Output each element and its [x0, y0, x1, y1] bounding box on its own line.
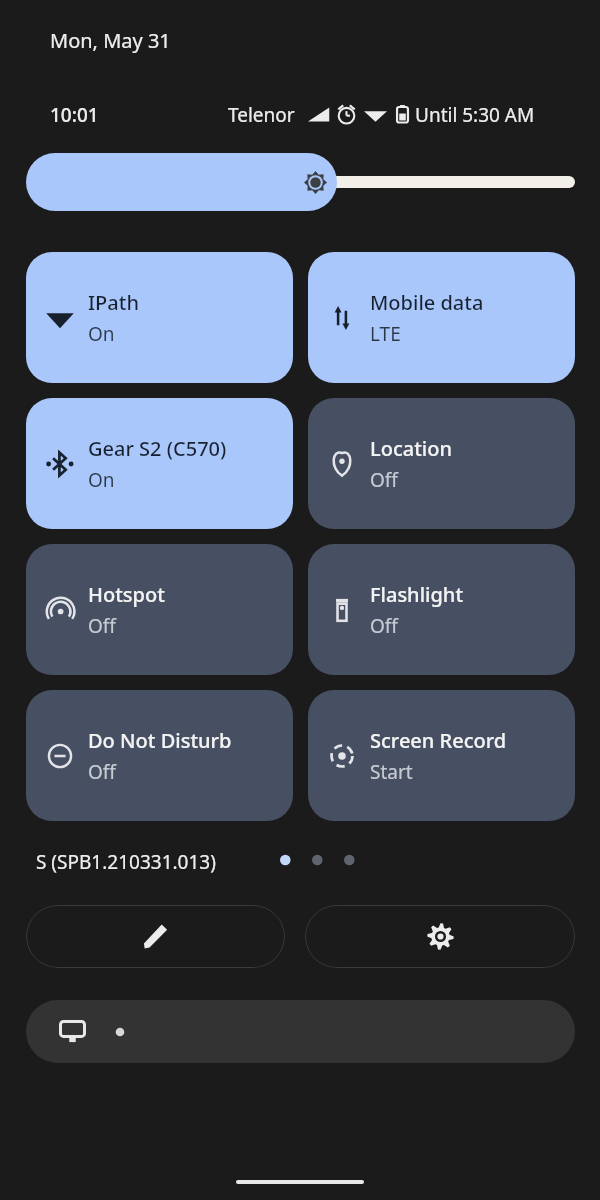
staticText: Flashlight — [370, 581, 464, 608]
staticText: Until 5:30 AM — [415, 102, 535, 128]
button[interactable]: Location — [308, 398, 575, 529]
staticText: Start — [370, 759, 413, 785]
button[interactable]: IPath — [26, 252, 293, 383]
button[interactable]: Settings — [305, 905, 575, 968]
button[interactable]: Hotspot — [26, 544, 293, 675]
button[interactable]: Brightness — [26, 153, 575, 211]
staticText: Gear S2 (C570) — [88, 435, 227, 462]
staticText: IPath — [88, 289, 139, 316]
button[interactable]: Edit tiles — [26, 905, 285, 968]
button[interactable]: Screen Record — [308, 690, 575, 821]
staticText: Hotspot — [88, 581, 165, 608]
staticText: Screen Record — [370, 727, 507, 754]
staticText: On — [88, 321, 115, 347]
button[interactable]: Cast screen — [26, 1000, 575, 1063]
staticText: Off — [88, 613, 116, 639]
staticText: Do Not Disturb — [88, 727, 232, 754]
staticText: S (SPB1.210331.013) — [36, 849, 216, 875]
staticText: Telenor — [228, 102, 295, 128]
button[interactable]: Do Not Disturb — [26, 690, 293, 821]
staticText: On — [88, 467, 115, 493]
button[interactable]: Mobile data — [308, 252, 575, 383]
button[interactable]: Flashlight — [308, 544, 575, 675]
staticText: 10:01 — [50, 102, 99, 128]
staticText: Location — [370, 435, 452, 462]
staticText: Mobile data — [370, 289, 484, 316]
button[interactable]: Gear S2 (C570) — [26, 398, 293, 529]
staticText: LTE — [370, 321, 401, 347]
staticText: Off — [88, 759, 116, 785]
staticText: Off — [370, 467, 398, 493]
staticText: Off — [370, 613, 398, 639]
staticText: Mon, May 31 — [50, 27, 171, 54]
